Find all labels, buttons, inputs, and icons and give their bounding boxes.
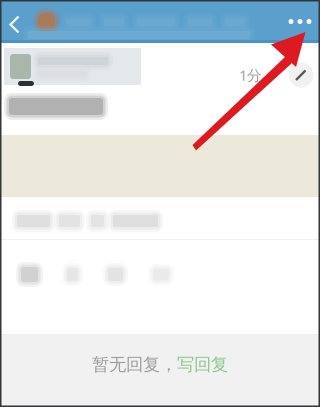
- staticText: 写回复: [177, 354, 228, 375]
- button[interactable]: More options: [280, 0, 320, 43]
- staticText: 暂无回复，: [92, 354, 177, 375]
- button[interactable]: Back: [0, 0, 30, 43]
- button[interactable]: Edit: [286, 60, 316, 90]
- button[interactable]: 暂无回复，: [0, 346, 320, 383]
- staticText: 1分: [239, 65, 262, 85]
